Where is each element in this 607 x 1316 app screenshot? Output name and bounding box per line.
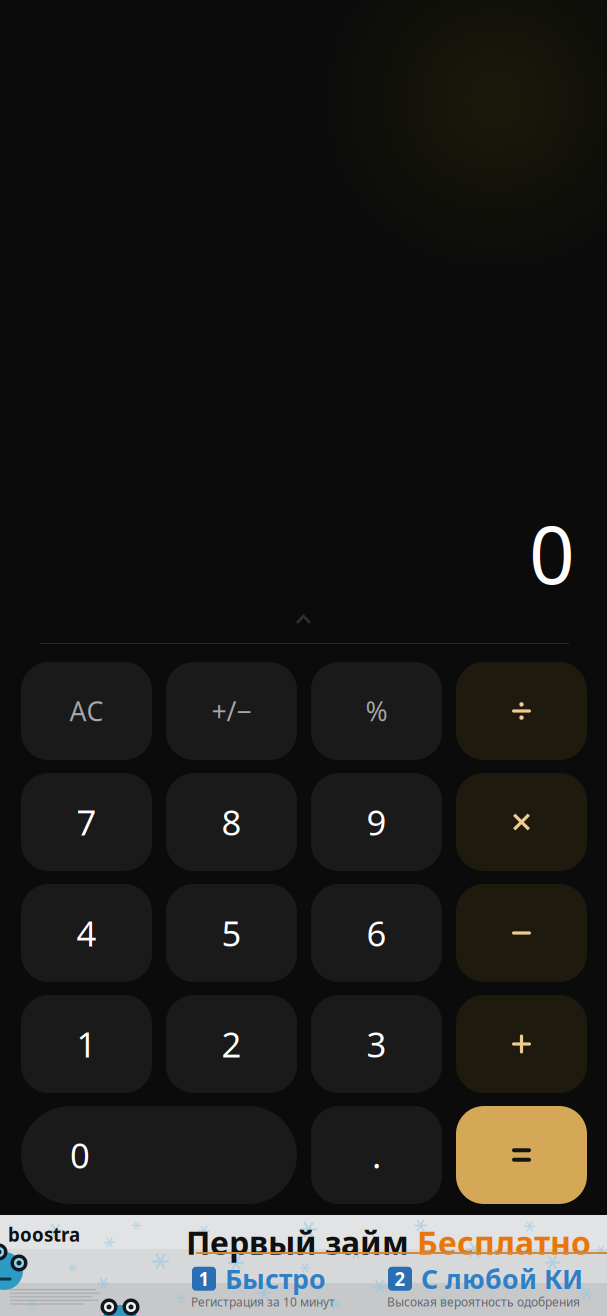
staticText: Регистрация за 10 минут [191, 1294, 335, 1310]
staticText: С любой КИ [421, 1261, 583, 1296]
button[interactable]: 1 [21, 995, 152, 1093]
staticText: 9 [366, 799, 386, 845]
staticText: Первый займ [186, 1221, 409, 1263]
staticText: boostra [8, 1222, 80, 1247]
button[interactable]: 5 [166, 884, 297, 982]
staticText: AC [69, 693, 103, 729]
staticText: % [365, 693, 387, 729]
button[interactable]: Multiply [456, 773, 587, 871]
staticText: 0 [70, 1132, 90, 1178]
button[interactable]: 6 [311, 884, 442, 982]
button[interactable]: 3 [311, 995, 442, 1093]
staticText: 7 [76, 799, 96, 845]
staticText: 0 [529, 500, 575, 606]
button[interactable]: 2 [166, 995, 297, 1093]
button[interactable]: +/− [166, 662, 297, 760]
button[interactable]: Equals [456, 1106, 587, 1204]
staticText: Бесплатно [417, 1221, 591, 1263]
staticText: 4 [76, 910, 96, 956]
staticText: 3 [366, 1021, 386, 1067]
staticText: . [372, 1132, 381, 1178]
button[interactable]: 7 [21, 773, 152, 871]
staticText: Высокая вероятность одобрения [387, 1294, 580, 1310]
staticText: +/− [211, 693, 251, 729]
staticText: 8 [221, 799, 241, 845]
staticText: 6 [366, 910, 386, 956]
button[interactable]: 8 [166, 773, 297, 871]
button[interactable]: boostra [0, 1215, 607, 1316]
staticText: 1 [76, 1021, 96, 1067]
button[interactable]: 4 [21, 884, 152, 982]
button[interactable]: . [311, 1106, 442, 1204]
button[interactable]: Divide [456, 662, 587, 760]
button[interactable]: % [311, 662, 442, 760]
staticText: 2 [394, 1266, 405, 1291]
button[interactable]: Subtract [456, 884, 587, 982]
button[interactable]: Add [456, 995, 587, 1093]
staticText: 5 [221, 910, 241, 956]
staticText: Быстро [225, 1261, 326, 1296]
button[interactable]: AC [21, 662, 152, 760]
staticText: 1 [198, 1266, 209, 1291]
button[interactable]: 0 [21, 1106, 297, 1204]
button[interactable]: 9 [311, 773, 442, 871]
staticText: 2 [221, 1021, 241, 1067]
